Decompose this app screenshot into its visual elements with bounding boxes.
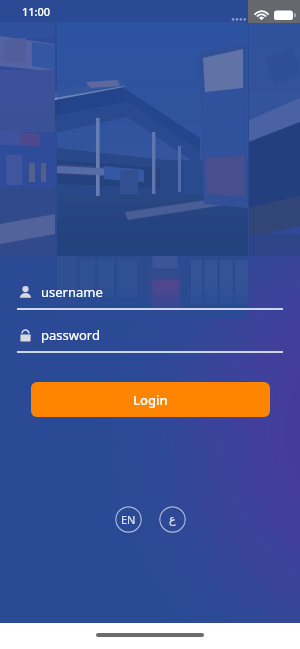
staticText: username [41, 283, 103, 301]
button[interactable]: ع [159, 506, 186, 533]
staticText: Login [133, 391, 168, 409]
button[interactable]: EN [115, 506, 142, 533]
staticText: 11:00 [22, 4, 51, 19]
staticText: ع [169, 513, 176, 526]
staticText: password [41, 326, 100, 344]
staticText: EN [121, 512, 136, 527]
button[interactable]: Login [31, 382, 270, 417]
